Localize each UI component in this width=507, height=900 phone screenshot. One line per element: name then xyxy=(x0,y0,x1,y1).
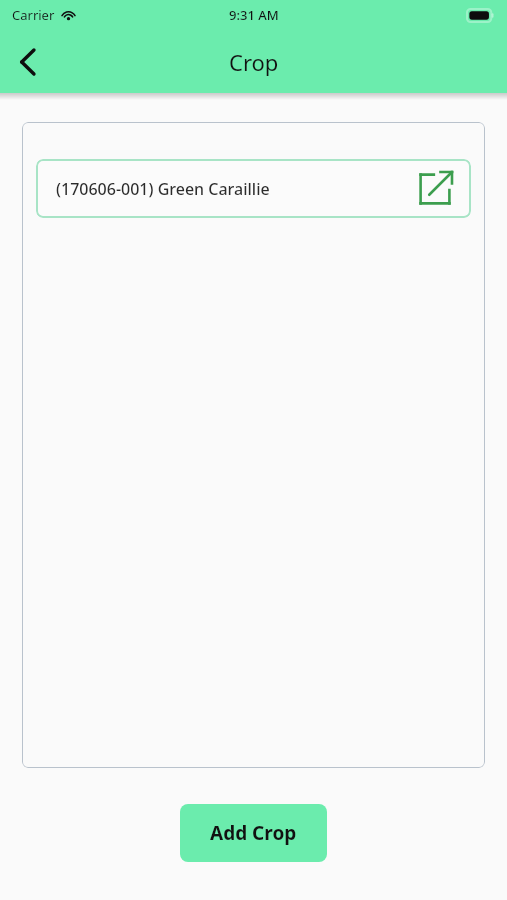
button[interactable]: Add Crop xyxy=(180,804,327,862)
staticText: Crop xyxy=(229,47,279,77)
staticText: Carrier xyxy=(12,6,55,24)
staticText: 9:31 AM xyxy=(229,6,279,24)
button[interactable]: Back xyxy=(0,35,54,89)
button[interactable]: (170606-001) Green Caraillie xyxy=(36,159,471,218)
staticText: Add Crop xyxy=(210,820,297,846)
other: Open xyxy=(417,171,453,207)
staticText: (170606-001) Green Caraillie xyxy=(56,178,270,200)
